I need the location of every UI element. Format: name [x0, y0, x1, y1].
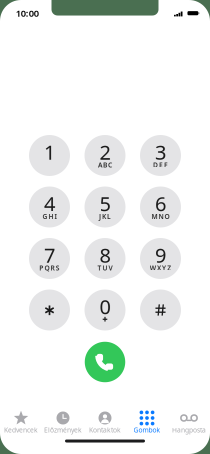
staticText: PQRS — [39, 263, 60, 272]
staticText: Hangposta — [172, 426, 206, 434]
staticText: 4 — [44, 190, 55, 217]
button[interactable]: Gombok — [126, 408, 168, 436]
button[interactable]: Előzmények — [42, 408, 84, 436]
staticText: 8 — [99, 242, 110, 268]
staticText: 6 — [155, 190, 166, 217]
staticText: Kontaktok — [89, 426, 121, 434]
button[interactable]: 2 — [84, 135, 125, 176]
button[interactable]: hash — [140, 289, 181, 330]
staticText: ABC — [98, 160, 112, 169]
button[interactable]: Kontaktok — [84, 408, 126, 436]
button[interactable]: 3 — [140, 135, 181, 176]
staticText: TUV — [97, 263, 113, 272]
staticText: DEF — [153, 160, 168, 169]
staticText: 5 — [99, 190, 110, 217]
button[interactable]: 5 — [84, 186, 125, 227]
button[interactable]: Kedvencek — [0, 408, 42, 436]
button[interactable]: 4 — [29, 186, 70, 227]
staticText: 2 — [99, 139, 110, 165]
staticText: Előzmények — [44, 426, 82, 434]
staticText: 3 — [155, 139, 166, 165]
button[interactable]: star — [29, 289, 70, 330]
button[interactable]: 1 — [29, 135, 70, 176]
button[interactable]: 6 — [140, 186, 181, 227]
button[interactable]: 0 — [84, 289, 125, 330]
button[interactable]: Hangposta — [168, 408, 210, 436]
staticText: JKL — [99, 212, 111, 221]
staticText: Gombok — [133, 426, 160, 434]
button[interactable]: 7 — [29, 238, 70, 279]
staticText: WXYZ — [150, 263, 171, 272]
staticText: 7 — [44, 242, 55, 268]
staticText: Kedvencek — [4, 426, 38, 434]
button[interactable]: Call — [85, 342, 125, 382]
staticText: 9 — [155, 242, 166, 268]
staticText: GHI — [42, 212, 57, 221]
button[interactable]: 9 — [140, 238, 181, 279]
staticText: 1 — [44, 139, 55, 165]
staticText: 10:00 — [16, 7, 39, 19]
staticText: MNO — [151, 212, 170, 221]
button[interactable]: 8 — [84, 238, 125, 279]
staticText: 0 — [99, 293, 110, 320]
